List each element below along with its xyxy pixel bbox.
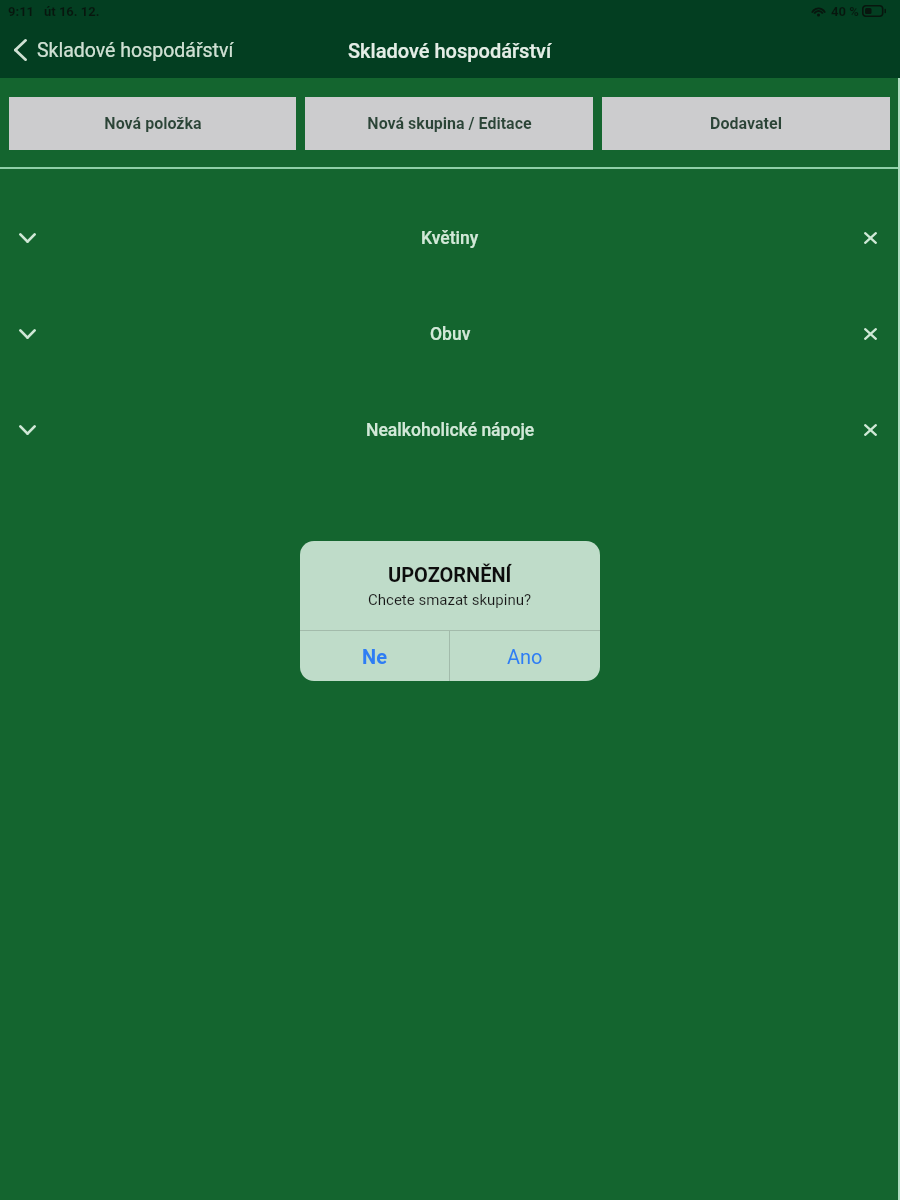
button[interactable]: Smazat (854, 318, 886, 350)
button[interactable]: Smazat (854, 414, 886, 446)
button[interactable]: Nová skupina / Editace (305, 97, 593, 150)
staticText: Ano (507, 645, 543, 668)
button[interactable]: Rozbalit (0, 190, 900, 286)
staticText: Nová skupina / Editace (367, 114, 532, 133)
staticText: Ne (362, 645, 387, 668)
button[interactable]: Rozbalit (10, 413, 44, 447)
staticText: 9:11 (8, 4, 35, 19)
staticText: Skladové hospodářství (37, 39, 234, 62)
staticText: Dodavatel (710, 114, 782, 133)
staticText: 40 % (831, 4, 859, 19)
button[interactable]: Rozbalit (0, 286, 900, 382)
staticText: Květiny (421, 228, 479, 249)
staticText: Chcete smazat skupinu? (368, 591, 532, 609)
staticText: út 16. 12. (44, 4, 100, 19)
button[interactable]: Dodavatel (602, 97, 890, 150)
button[interactable]: Nová položka (9, 97, 296, 150)
button[interactable]: Ne (300, 631, 449, 681)
staticText: Nealkoholické nápoje (366, 420, 535, 441)
button[interactable]: Skladové hospodářství (14, 26, 234, 74)
button[interactable]: Rozbalit (10, 221, 44, 255)
staticText: Nová položka (104, 114, 202, 133)
staticText: UPOZORNĚNÍ (388, 563, 512, 586)
staticText: Obuv (430, 324, 471, 345)
button[interactable]: Ano (450, 631, 600, 681)
button[interactable]: Rozbalit (0, 382, 900, 478)
button[interactable]: Rozbalit (10, 317, 44, 351)
staticText: Skladové hospodářství (348, 39, 552, 62)
button[interactable]: Smazat (854, 222, 886, 254)
